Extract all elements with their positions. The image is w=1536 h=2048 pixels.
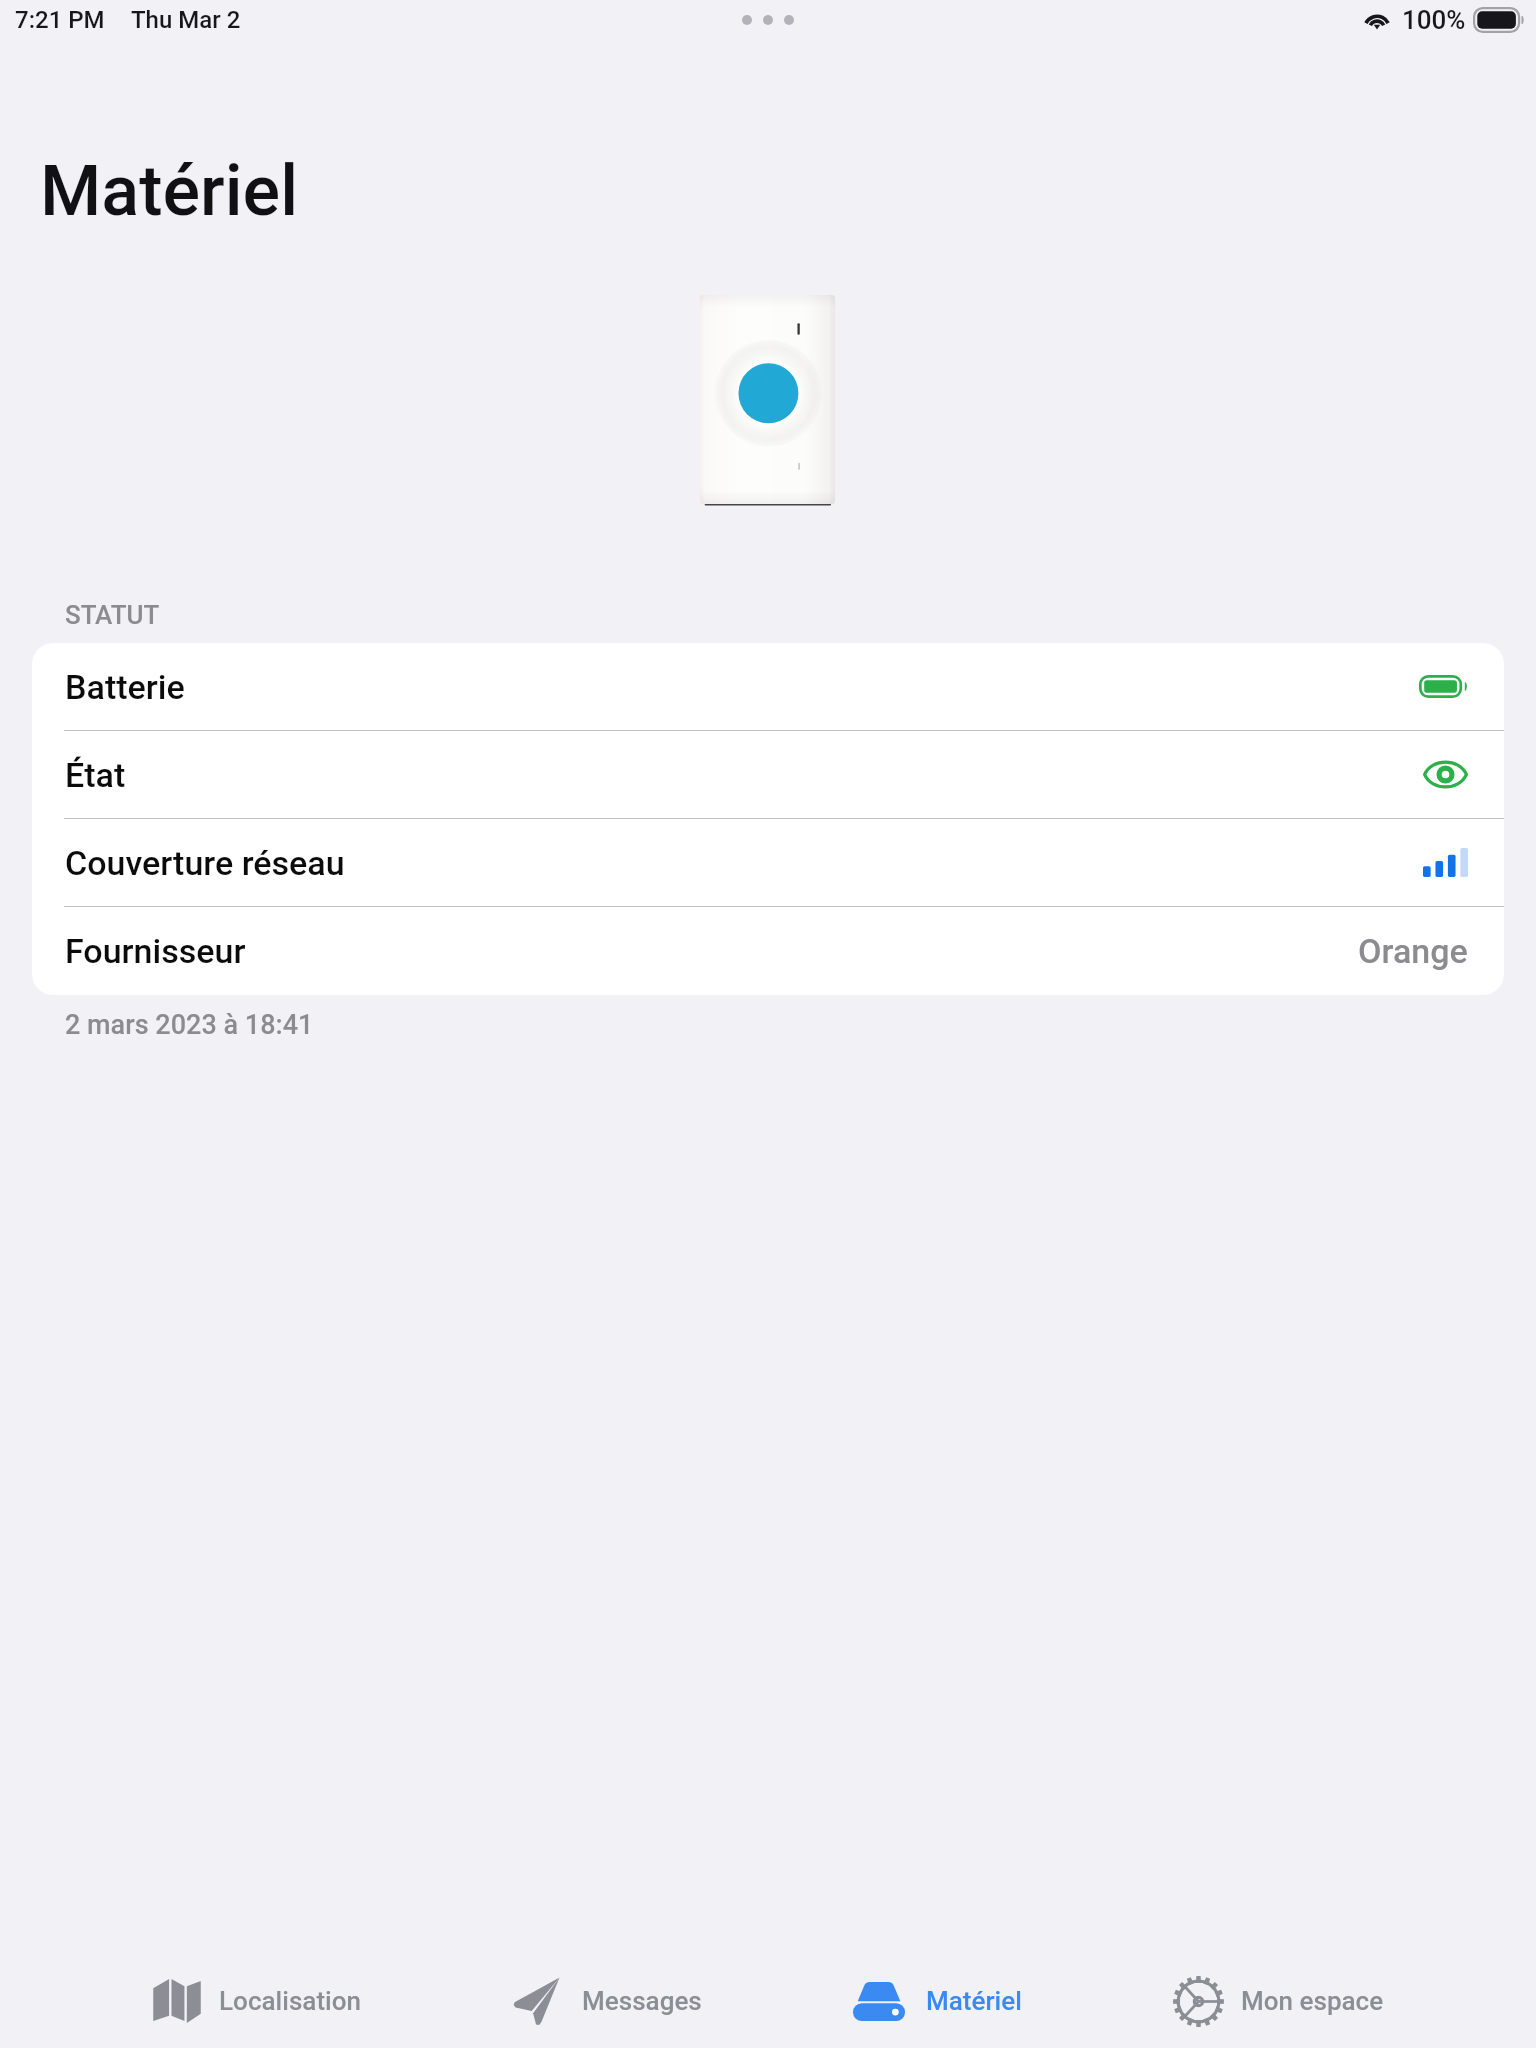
staticText: Messages	[582, 1986, 702, 2016]
button[interactable]: Batterie	[32, 643, 1504, 731]
staticText: Localisation	[219, 1986, 361, 2016]
staticText: Fournisseur	[65, 931, 246, 971]
staticText: Thu Mar 2	[131, 6, 241, 34]
other: Couverture réseau	[1423, 848, 1468, 877]
staticText: 100%	[1402, 5, 1466, 35]
other: Batterie pleine	[1419, 675, 1468, 698]
button[interactable]: Messages	[512, 1953, 702, 2048]
staticText: 2 mars 2023 à 18:41	[65, 1009, 314, 1041]
staticText: 7:21 PM	[15, 6, 105, 34]
staticText: STATUT	[65, 600, 160, 630]
staticText: Couverture réseau	[65, 843, 345, 883]
button[interactable]: Localisation	[153, 1953, 361, 2048]
button[interactable]: Couverture réseau	[32, 819, 1504, 907]
staticText: Orange	[1358, 931, 1468, 971]
button[interactable]: Fournisseur	[32, 907, 1504, 995]
button[interactable]: État	[32, 731, 1504, 819]
staticText: Mon espace	[1241, 1986, 1384, 2016]
button[interactable]: Matériel	[853, 1953, 1022, 2048]
button[interactable]: Mon espace	[1173, 1953, 1384, 2048]
staticText: Matériel	[40, 150, 299, 232]
staticText: Matériel	[926, 1986, 1022, 2016]
other: État visible	[1423, 760, 1468, 789]
staticText: État	[65, 755, 126, 795]
staticText: Batterie	[65, 667, 185, 707]
